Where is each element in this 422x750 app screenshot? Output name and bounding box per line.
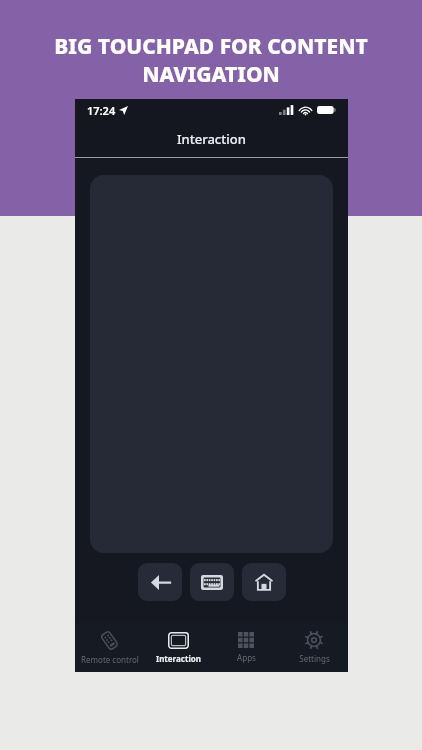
- button[interactable]: Back: [138, 563, 182, 601]
- staticText: BIG TOUCHPAD FOR CONTENT NAVIGATION: [40, 32, 382, 88]
- button[interactable]: Settings: [280, 623, 348, 672]
- button[interactable]: Interaction: [144, 623, 212, 672]
- button[interactable]: Remote control: [75, 623, 144, 672]
- button[interactable]: Keyboard: [190, 563, 234, 601]
- button[interactable]: Apps: [212, 623, 280, 672]
- staticText: 17:24: [87, 103, 116, 118]
- button[interactable]: Home: [242, 563, 286, 601]
- staticText: Remote control: [81, 654, 139, 665]
- staticText: Interaction: [177, 130, 246, 148]
- staticText: Apps: [237, 652, 256, 663]
- staticText: Settings: [299, 653, 330, 664]
- staticText: Interaction: [156, 653, 201, 664]
